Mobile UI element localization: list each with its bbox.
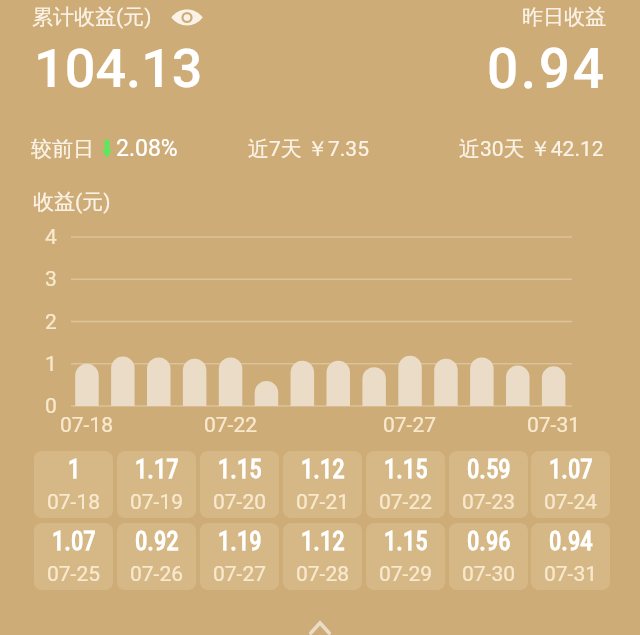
- staticText: 累计收益(元): [32, 4, 152, 30]
- button[interactable]: 1.19: [200, 523, 279, 590]
- button[interactable]: 1.15: [366, 451, 445, 518]
- staticText: 较前日: [31, 136, 94, 162]
- staticText: 收益(元): [33, 189, 111, 215]
- staticText: 0.59: [467, 455, 511, 484]
- staticText: 4: [45, 225, 57, 249]
- staticText: 1: [68, 455, 81, 484]
- staticText: 昨日收益: [522, 4, 606, 30]
- staticText: 1.07: [52, 527, 96, 556]
- staticText: 1.12: [301, 527, 345, 556]
- staticText: 07-27: [383, 413, 437, 435]
- staticText: 1.15: [384, 455, 428, 484]
- staticText: 07-29: [379, 562, 433, 587]
- button[interactable]: 0.59: [449, 451, 528, 518]
- staticText: 07-25: [47, 562, 101, 587]
- staticText: 07-24: [544, 490, 598, 515]
- staticText: 1: [45, 352, 57, 376]
- staticText: 0.94: [549, 527, 593, 556]
- staticText: 07-22: [204, 413, 258, 435]
- button[interactable]: Toggle amount visibility: [170, 5, 204, 29]
- staticText: 1.07: [549, 455, 593, 484]
- staticText: 07-31: [544, 562, 598, 587]
- button[interactable]: Collapse: [300, 612, 340, 635]
- staticText: 0.94: [487, 37, 607, 101]
- staticText: 07-30: [462, 562, 516, 587]
- staticText: 1.17: [135, 455, 179, 484]
- staticText: 07-22: [379, 490, 433, 515]
- button[interactable]: 1.15: [366, 523, 445, 590]
- staticText: 0.96: [467, 527, 511, 556]
- staticText: 3: [45, 267, 57, 291]
- button[interactable]: 1.15: [200, 451, 279, 518]
- staticText: 07-28: [296, 562, 350, 587]
- staticText: 104.13: [34, 37, 203, 100]
- button[interactable]: 0.92: [117, 523, 196, 590]
- staticText: 07-18: [60, 413, 114, 435]
- staticText: 近7天 ￥7.35: [248, 136, 369, 162]
- staticText: 2.08%: [116, 135, 178, 162]
- staticText: 07-23: [462, 490, 516, 515]
- staticText: 07-26: [130, 562, 184, 587]
- button[interactable]: 1.07: [531, 451, 610, 518]
- staticText: 2: [45, 310, 57, 334]
- staticText: 1.19: [218, 527, 262, 556]
- staticText: 1.15: [218, 455, 262, 484]
- staticText: 0.92: [135, 527, 179, 556]
- button[interactable]: 1.17: [117, 451, 196, 518]
- button[interactable]: 1: [34, 451, 113, 518]
- staticText: 0: [45, 394, 57, 418]
- button[interactable]: 0.96: [449, 523, 528, 590]
- button[interactable]: 1.12: [283, 451, 362, 518]
- button[interactable]: 1.12: [283, 523, 362, 590]
- staticText: 07-31: [527, 413, 581, 435]
- staticText: 07-27: [213, 562, 267, 587]
- staticText: 1.15: [384, 527, 428, 556]
- staticText: 1.12: [301, 455, 345, 484]
- staticText: 07-19: [130, 490, 184, 515]
- staticText: 近30天 ￥42.12: [459, 136, 604, 162]
- button[interactable]: 0.94: [531, 523, 610, 590]
- button[interactable]: 1.07: [34, 523, 113, 590]
- staticText: 07-18: [47, 490, 101, 515]
- staticText: 07-21: [296, 490, 350, 515]
- staticText: 07-20: [213, 490, 267, 515]
